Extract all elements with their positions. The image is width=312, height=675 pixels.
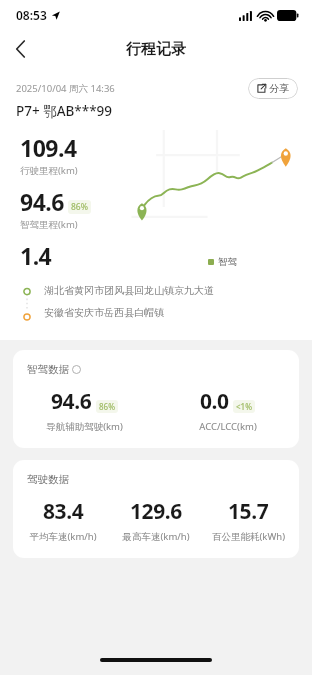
staticText: 2025/10/04 周六 14:36 (16, 82, 115, 95)
staticText: 行程记录 (126, 40, 186, 59)
staticText: ACC/LCC(km) (199, 420, 257, 433)
staticText: 分享 (269, 82, 289, 95)
button[interactable]: Back (0, 30, 40, 68)
button[interactable]: 驾驶数据 (13, 460, 299, 558)
staticText: 0.0 (200, 387, 229, 416)
staticText: 83.4 (43, 497, 84, 526)
staticText: 安徽省安庆市岳西县白帽镇 (44, 306, 164, 319)
staticText: 109.4 (20, 132, 77, 163)
staticText: 15.7 (228, 497, 269, 526)
staticText: 湖北省黄冈市团风县回龙山镇京九大道 (44, 284, 214, 297)
staticText: 智驾里程(km) (20, 218, 78, 231)
staticText: 最高车速(km/h) (122, 530, 190, 543)
staticText: <1% (236, 401, 252, 412)
staticText: 129.6 (130, 497, 182, 526)
staticText: 94.6 (51, 387, 92, 416)
staticText: 86% (71, 201, 88, 213)
staticText: 平均车速(km/h) (29, 530, 97, 543)
staticText: P7+ 鄂AB***99 (16, 102, 112, 120)
staticText: 行驶里程(km) (20, 164, 78, 177)
button[interactable]: 智驾数据 (13, 350, 299, 448)
staticText: 智驾 (218, 256, 237, 268)
staticText: 86% (99, 401, 115, 412)
staticText: 百公里能耗(kWh) (212, 530, 285, 543)
staticText: 导航辅助驾驶(km) (46, 420, 123, 433)
staticText: 1.4 (20, 240, 52, 270)
staticText: 智驾数据 (27, 363, 69, 376)
staticText: 驾驶数据 (27, 473, 69, 486)
staticText: 94.6 (20, 186, 64, 217)
button[interactable]: 分享 (248, 78, 298, 99)
staticText: 08:53 (16, 7, 47, 23)
